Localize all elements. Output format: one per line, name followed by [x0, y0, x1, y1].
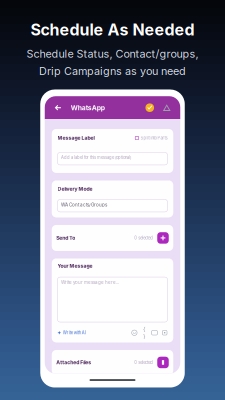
staticText: Add a label for this message (optional): [61, 155, 132, 160]
button[interactable]: Back: [48, 96, 67, 119]
button[interactable]: Schedule status: [141, 96, 158, 119]
staticText: Schedule Status, Contact/groups,: [26, 47, 198, 60]
staticText: Drip Campaigns as you need: [39, 64, 186, 77]
staticText: 0 selected: [134, 235, 153, 240]
staticText: WhatsApp: [71, 104, 105, 112]
button[interactable]: Split into Parts: [135, 135, 167, 140]
staticText: Write your message here...: [61, 280, 119, 285]
staticText: Schedule As Needed: [30, 20, 194, 39]
button[interactable]: Attach media: [162, 330, 167, 335]
staticText: Your Message: [57, 263, 92, 269]
staticText: Attached Files: [56, 359, 91, 365]
staticText: WA Contacts/Groups: [61, 202, 107, 207]
button[interactable]: Add recipients: [157, 232, 169, 244]
button[interactable]: Insert variable: [142, 330, 147, 335]
staticText: { }: [143, 326, 146, 340]
button[interactable]: Write with AI: [57, 330, 86, 335]
button[interactable]: Emoji: [132, 330, 137, 335]
staticText: Send To: [56, 235, 75, 241]
staticText: Message Label: [57, 135, 94, 141]
staticText: 0 selected: [134, 360, 153, 365]
button[interactable]: Warnings: [158, 96, 175, 119]
staticText: Delivery Mode: [57, 186, 92, 192]
staticText: Split into Parts: [140, 135, 167, 140]
button[interactable]: Message template: [152, 330, 157, 335]
staticText: Write with AI: [63, 330, 86, 335]
button[interactable]: Attach files: [157, 357, 169, 368]
